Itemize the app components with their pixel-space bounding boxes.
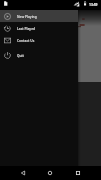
staticText: Last Played <box>17 27 36 31</box>
button[interactable]: Contact Us <box>0 34 78 46</box>
staticText: Contact Us <box>17 39 35 43</box>
button[interactable]: New Playing <box>0 10 78 22</box>
button[interactable]: Quit <box>0 49 78 61</box>
button[interactable]: Back <box>11 166 34 180</box>
button[interactable]: Last Played <box>0 22 78 34</box>
button[interactable]: Home <box>38 166 61 180</box>
staticText: Quit <box>17 54 24 58</box>
staticText: New Playing <box>17 15 37 19</box>
button[interactable]: Recents <box>66 166 89 180</box>
staticText: 13:59 <box>89 2 98 6</box>
